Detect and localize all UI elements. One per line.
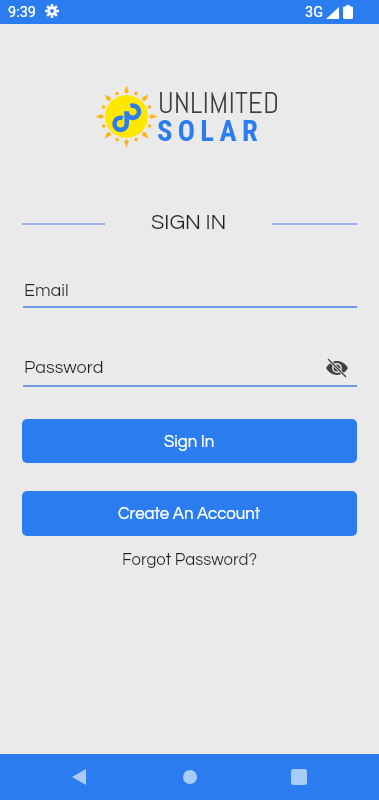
button[interactable]: Create An Account <box>22 491 357 536</box>
button[interactable]: Show password <box>323 354 351 382</box>
staticText: Create An Account <box>118 505 261 522</box>
staticText: Sign In <box>164 433 215 450</box>
staticText: 9:39 <box>8 4 36 21</box>
staticText: SIGN IN <box>151 211 227 233</box>
staticText: Email <box>24 281 69 300</box>
staticText: SOLAR <box>157 114 264 148</box>
button[interactable]: Forgot Password? <box>116 547 263 572</box>
staticText: Password <box>24 358 104 377</box>
button[interactable]: Home <box>170 757 210 797</box>
button[interactable]: Recents <box>279 757 319 797</box>
staticText: UNLIMITED <box>158 84 280 122</box>
staticText: 3G <box>305 4 324 21</box>
button[interactable]: Back <box>59 757 99 797</box>
staticText: Forgot Password? <box>122 551 257 568</box>
button[interactable]: Sign In <box>22 419 357 463</box>
